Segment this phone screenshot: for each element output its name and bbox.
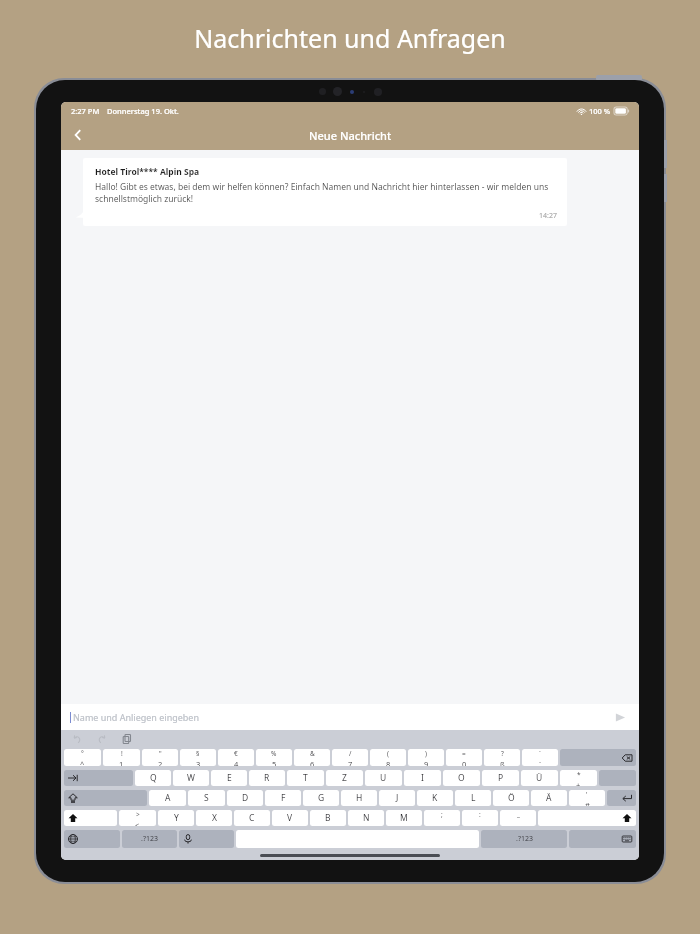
button[interactable]: O bbox=[443, 770, 480, 786]
staticText: * bbox=[577, 770, 581, 779]
staticText: T bbox=[303, 772, 308, 784]
staticText: Nachrichten und Anfragen bbox=[194, 21, 506, 55]
button[interactable]: B bbox=[310, 810, 346, 826]
button[interactable]: Ü bbox=[521, 770, 558, 786]
staticText: ° bbox=[81, 749, 84, 758]
button[interactable]: I bbox=[404, 770, 441, 786]
button[interactable]: : bbox=[462, 810, 498, 826]
staticText: 1 bbox=[119, 759, 124, 766]
staticText: D bbox=[242, 792, 249, 804]
button[interactable]: ) bbox=[408, 749, 444, 766]
button[interactable]: Einfügen bbox=[119, 731, 134, 746]
button[interactable]: P bbox=[482, 770, 519, 786]
staticText: H bbox=[356, 792, 363, 804]
button[interactable]: .?123 bbox=[122, 830, 177, 848]
staticText: ) bbox=[425, 749, 427, 758]
staticText: 5 bbox=[272, 759, 277, 766]
button[interactable]: Diktat bbox=[179, 830, 234, 848]
button[interactable]: F bbox=[265, 790, 301, 806]
staticText: J bbox=[396, 792, 399, 804]
staticText: F bbox=[281, 792, 286, 804]
staticText: .?123 bbox=[516, 834, 533, 844]
button[interactable]: V bbox=[272, 810, 308, 826]
button[interactable]: Umschalt bbox=[64, 810, 117, 826]
staticText: X bbox=[212, 812, 217, 824]
button[interactable]: ( bbox=[370, 749, 406, 766]
button[interactable]: Y bbox=[158, 810, 194, 826]
button[interactable]: Q bbox=[135, 770, 171, 786]
button[interactable]: ' bbox=[569, 790, 605, 806]
button[interactable]: " bbox=[142, 749, 178, 766]
button[interactable]: / bbox=[332, 749, 368, 766]
button[interactable]: Eingabe bbox=[607, 790, 636, 806]
button[interactable]: ; bbox=[424, 810, 460, 826]
button[interactable]: _ bbox=[500, 810, 536, 826]
button[interactable]: Tastatur ausblenden bbox=[569, 830, 636, 848]
staticText: > bbox=[136, 810, 140, 819]
staticText: Y bbox=[174, 812, 179, 824]
button[interactable]: S bbox=[188, 790, 225, 806]
staticText: < bbox=[135, 820, 140, 826]
button[interactable]: A bbox=[149, 790, 186, 806]
button[interactable]: Feststelltaste bbox=[64, 790, 147, 806]
staticText: " bbox=[159, 749, 162, 758]
button[interactable]: Ä bbox=[531, 790, 567, 806]
staticText: R bbox=[264, 772, 270, 784]
button[interactable]: Name und Anliegen eingeben bbox=[61, 704, 639, 730]
staticText: % bbox=[271, 749, 277, 758]
button[interactable]: J bbox=[379, 790, 415, 806]
button[interactable]: L bbox=[455, 790, 491, 806]
button[interactable]: W bbox=[173, 770, 209, 786]
staticText: Neue Nachricht bbox=[309, 128, 392, 143]
button[interactable]: H bbox=[341, 790, 377, 806]
button[interactable]: D bbox=[227, 790, 263, 806]
button[interactable]: Ö bbox=[493, 790, 529, 806]
button[interactable]: ° bbox=[64, 749, 101, 766]
button[interactable]: ? bbox=[484, 749, 520, 766]
staticText: Z bbox=[342, 772, 347, 784]
button[interactable]: Umschalt bbox=[538, 810, 636, 826]
button[interactable]: ! bbox=[103, 749, 140, 766]
button[interactable]: Sprache bbox=[64, 830, 120, 848]
button[interactable]: Wiederholen bbox=[94, 731, 109, 746]
staticText: 14:27 bbox=[539, 211, 557, 221]
button[interactable]: * bbox=[560, 770, 597, 786]
button[interactable]: N bbox=[348, 810, 384, 826]
button[interactable]: Rückgängig bbox=[69, 731, 84, 746]
button[interactable]: C bbox=[234, 810, 270, 826]
button[interactable]: G bbox=[303, 790, 339, 806]
button[interactable]: Senden bbox=[610, 707, 630, 727]
staticText: ` bbox=[539, 749, 541, 758]
button[interactable]: Hotel Tirol**** Alpin Spa bbox=[83, 158, 567, 226]
button[interactable]: § bbox=[180, 749, 216, 766]
button[interactable]: Löschen bbox=[560, 749, 636, 766]
button[interactable]: .?123 bbox=[481, 830, 567, 848]
button[interactable]: Zurück bbox=[61, 120, 95, 150]
button[interactable]: & bbox=[294, 749, 330, 766]
staticText: K bbox=[432, 792, 438, 804]
button[interactable]: ` bbox=[522, 749, 558, 766]
button[interactable]: % bbox=[256, 749, 292, 766]
staticText: 6 bbox=[310, 759, 315, 766]
button[interactable]: E bbox=[211, 770, 247, 786]
button[interactable]: € bbox=[218, 749, 254, 766]
button[interactable]: T bbox=[287, 770, 324, 786]
button[interactable]: U bbox=[365, 770, 402, 786]
button[interactable]: K bbox=[417, 790, 453, 806]
button[interactable]: X bbox=[196, 810, 232, 826]
button[interactable]: M bbox=[386, 810, 422, 826]
staticText: ; bbox=[441, 810, 443, 819]
button[interactable]: > bbox=[119, 810, 156, 826]
staticText: ß bbox=[500, 759, 505, 766]
button[interactable]: = bbox=[446, 749, 482, 766]
staticText: = bbox=[462, 749, 466, 758]
staticText: .?123 bbox=[141, 834, 158, 844]
button[interactable]: Tabulator bbox=[64, 770, 133, 786]
staticText: G bbox=[318, 792, 325, 804]
button[interactable]: Z bbox=[326, 770, 363, 786]
button[interactable]: R bbox=[249, 770, 285, 786]
